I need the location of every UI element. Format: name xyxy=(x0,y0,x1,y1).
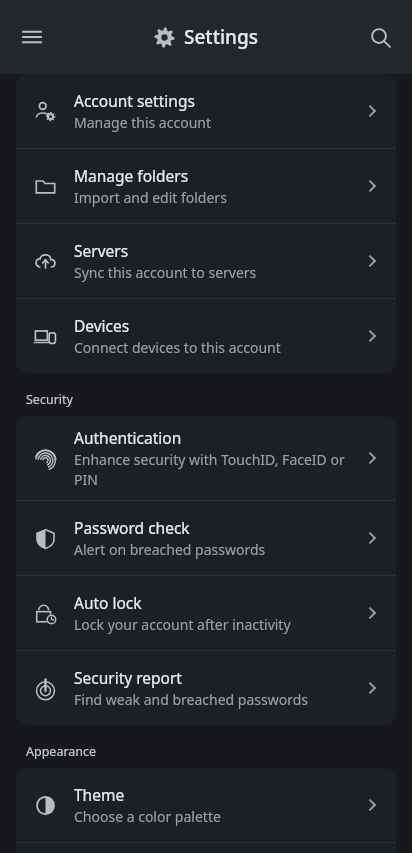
staticText: Sync this account to servers xyxy=(74,263,257,282)
button[interactable]: Open navigation menu xyxy=(10,15,54,59)
staticText: Servers xyxy=(74,240,129,261)
button[interactable]: Manage folders xyxy=(16,149,396,223)
button[interactable]: Theme xyxy=(16,768,396,842)
button[interactable]: Authentication xyxy=(16,416,396,500)
staticText: Authentication xyxy=(74,427,182,448)
staticText: Account settings xyxy=(74,90,195,111)
staticText: Appearance xyxy=(26,743,97,760)
staticText: Find weak and breached passwords xyxy=(74,690,308,709)
button[interactable]: Security report xyxy=(16,651,396,725)
staticText: Enhance security with TouchID, FaceID or… xyxy=(74,450,352,489)
staticText: Theme xyxy=(74,784,125,805)
staticText: Auto lock xyxy=(74,592,142,613)
button[interactable]: Servers xyxy=(16,224,396,298)
button[interactable]: Auto lock xyxy=(16,576,396,650)
button[interactable]: Account settings xyxy=(16,74,396,148)
staticText: Security report xyxy=(74,667,182,688)
staticText: Import and edit folders xyxy=(74,188,227,207)
button[interactable]: Password check xyxy=(16,501,396,575)
button[interactable]: Search xyxy=(358,15,402,59)
staticText: Manage this account xyxy=(74,113,211,132)
staticText: Manage folders xyxy=(74,165,189,186)
staticText: Settings xyxy=(184,24,258,50)
staticText: Choose a color palette xyxy=(74,807,221,826)
staticText: Password check xyxy=(74,517,190,538)
staticText: Devices xyxy=(74,315,130,336)
staticText: Security xyxy=(26,391,73,408)
button[interactable]: Devices xyxy=(16,299,396,373)
staticText: Connect devices to this account xyxy=(74,338,281,357)
staticText: Alert on breached passwords xyxy=(74,540,266,559)
staticText: Lock your account after inactivity xyxy=(74,615,291,634)
